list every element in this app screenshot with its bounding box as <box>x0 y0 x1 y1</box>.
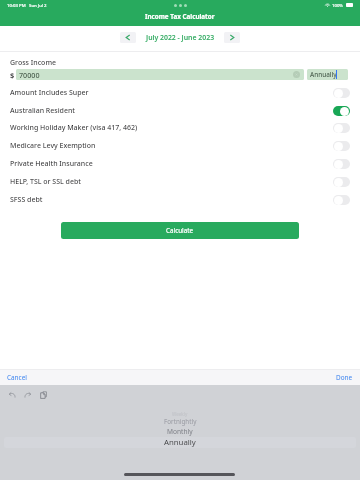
button[interactable]: Annually <box>307 69 348 80</box>
button[interactable]: Enabled <box>333 106 350 116</box>
staticText: 100% <box>332 2 344 8</box>
button[interactable]: Australian Resident <box>0 102 360 119</box>
staticText: Working Holiday Maker (visa 417, 462) <box>10 123 138 133</box>
button[interactable]: HELP, TSL or SSL debt <box>0 173 360 190</box>
staticText: Calculate <box>166 226 194 235</box>
button[interactable]: Disabled <box>333 177 350 187</box>
staticText: Amount Includes Super <box>10 88 89 98</box>
button[interactable]: Disabled <box>333 159 350 169</box>
button[interactable]: Private Health Insurance <box>0 155 360 172</box>
button[interactable]: Clear text <box>293 71 300 78</box>
button[interactable]: Disabled <box>333 88 350 98</box>
button[interactable]: Undo <box>8 391 16 399</box>
staticText: Income Tax Calculator <box>145 12 215 21</box>
button[interactable]: Paste <box>40 391 47 399</box>
button[interactable]: Previous financial year <box>120 32 136 43</box>
button[interactable]: Working Holiday Maker (visa 417, 462) <box>0 119 360 136</box>
staticText: Australian Resident <box>10 106 76 116</box>
button[interactable]: July 2022 - June 2023 <box>146 33 215 42</box>
staticText: Weekly <box>172 411 188 417</box>
button[interactable]: Amount Includes Super <box>0 84 360 101</box>
staticText: Annually <box>310 70 337 79</box>
button[interactable]: Disabled <box>333 123 350 133</box>
staticText: Annually <box>164 437 196 448</box>
staticText: Medicare Levy Exemption <box>10 141 96 151</box>
button[interactable]: Disabled <box>333 141 350 151</box>
button[interactable]: Medicare Levy Exemption <box>0 137 360 154</box>
button[interactable]: Redo <box>24 391 32 399</box>
staticText: 70000 <box>19 70 40 80</box>
staticText: SFSS debt <box>10 195 43 205</box>
button[interactable]: Next financial year <box>224 32 240 43</box>
staticText: HELP, TSL or SSL debt <box>10 177 82 187</box>
staticText: $ <box>10 70 15 80</box>
staticText: Private Health Insurance <box>10 159 93 169</box>
staticText: Monthly <box>167 427 193 436</box>
staticText: Fortnightly <box>164 417 197 426</box>
button[interactable]: Done <box>336 373 360 382</box>
button[interactable]: Cancel <box>0 373 27 382</box>
button[interactable]: 70000 <box>16 69 304 80</box>
button[interactable]: SFSS debt <box>0 191 360 208</box>
button[interactable]: Calculate <box>61 222 299 239</box>
staticText: Gross Income <box>10 58 57 68</box>
staticText: 10:03 PM Sun Jul 2 <box>7 2 47 8</box>
button[interactable]: Disabled <box>333 195 350 205</box>
